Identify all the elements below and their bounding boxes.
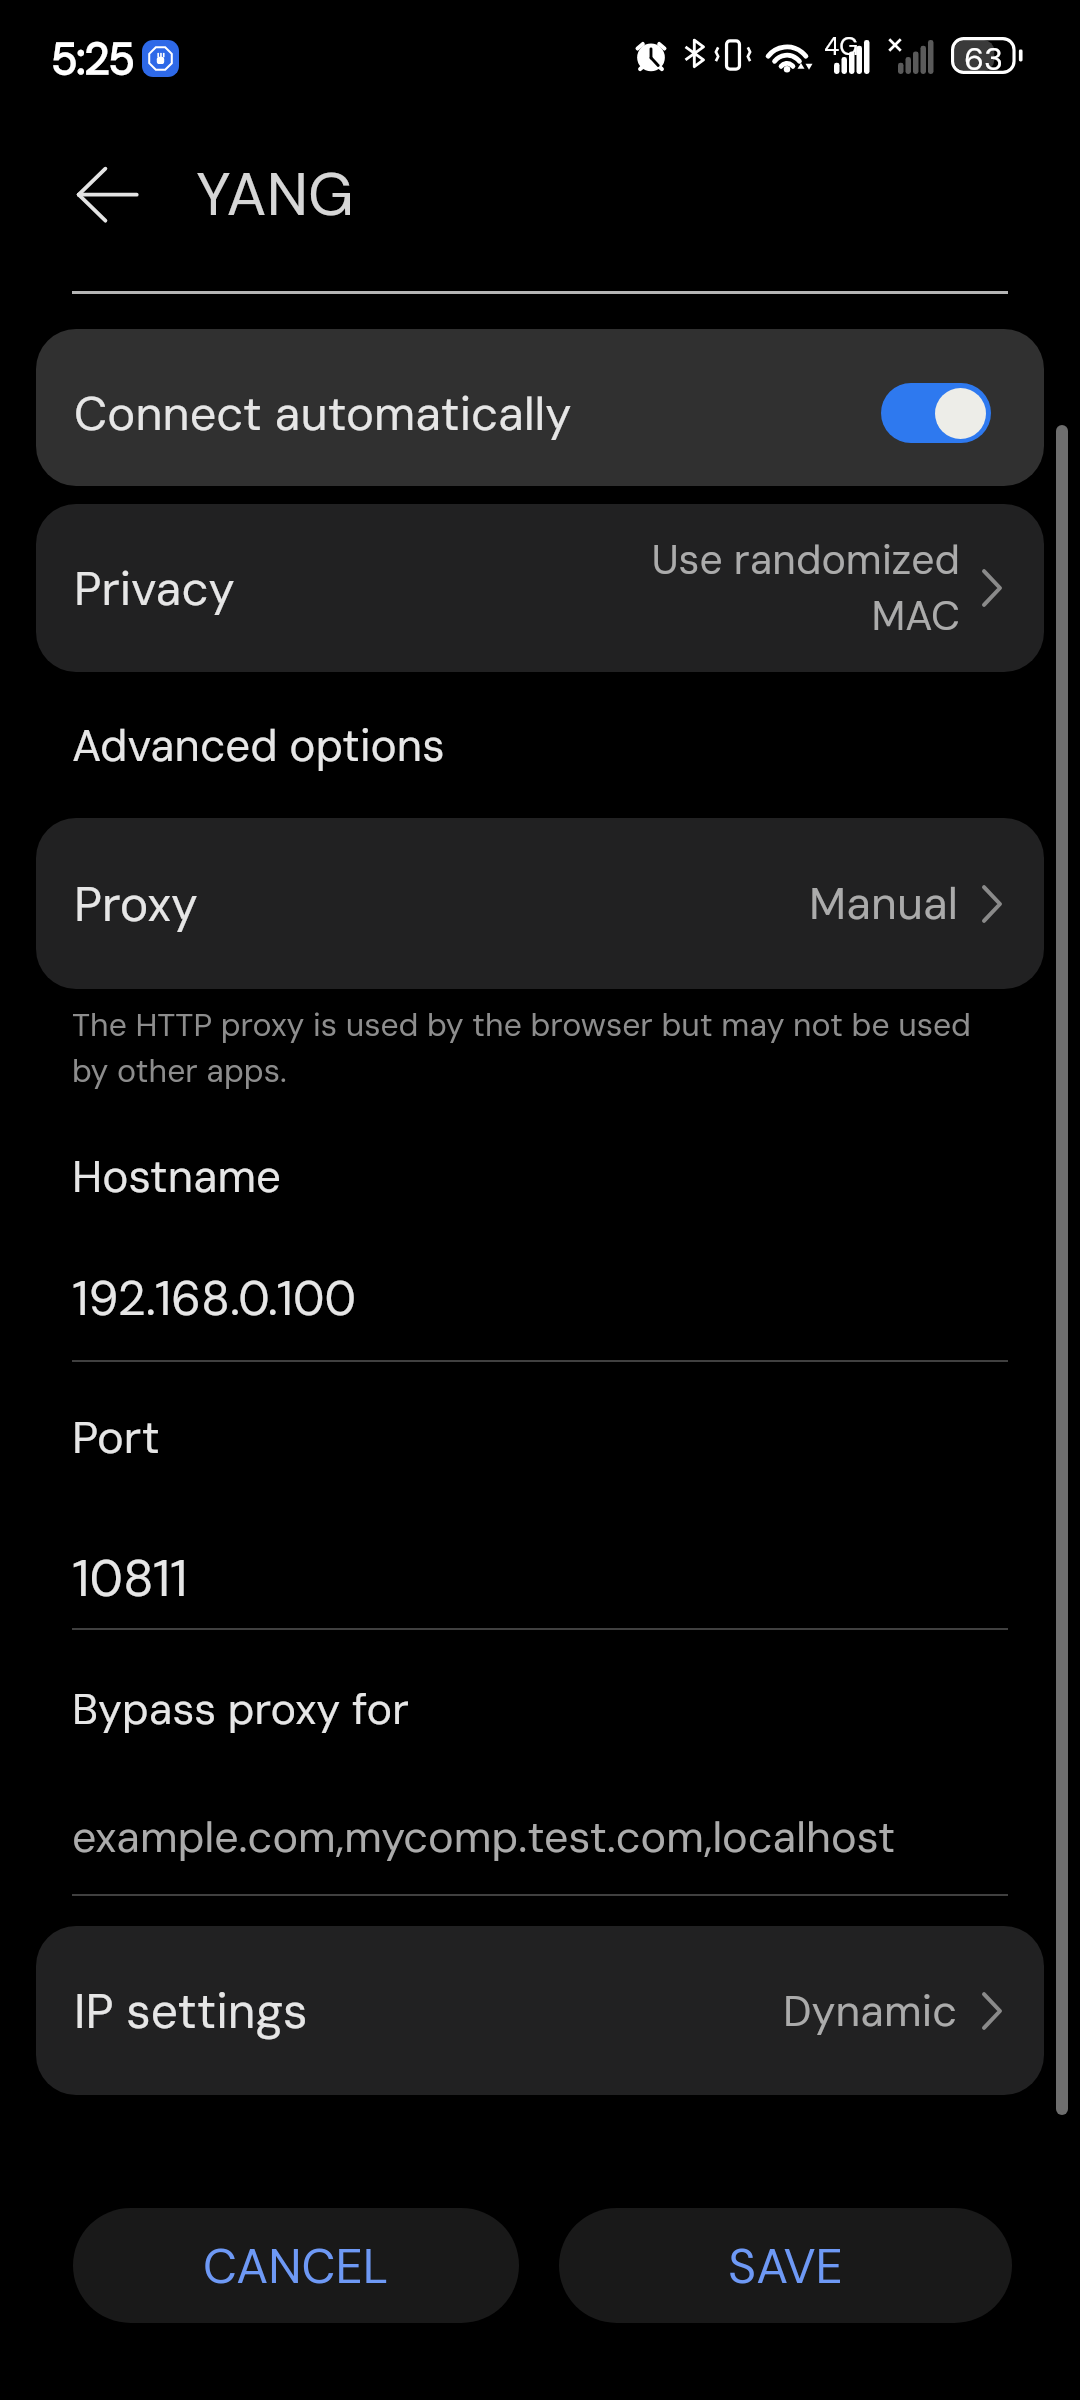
staticText: SAVE: [728, 2235, 843, 2297]
staticText: Dynamic: [783, 1983, 958, 2039]
staticText: Connect automatically: [74, 383, 881, 444]
staticText: Privacy: [74, 558, 235, 619]
staticText: Advanced options: [72, 717, 445, 774]
button[interactable]: Connect automatically: [881, 383, 991, 443]
staticText: example.com,mycomp.test.com,localhost: [72, 1809, 896, 1865]
staticText: 5:25: [51, 30, 134, 87]
staticText: Port: [72, 1408, 160, 1467]
staticText: 10811: [72, 1545, 188, 1611]
staticText: 63: [964, 38, 1004, 80]
button[interactable]: SAVE: [559, 2208, 1012, 2323]
staticText: 4G: [824, 30, 859, 63]
button[interactable]: Connect automatically: [36, 329, 1044, 486]
staticText: Manual: [809, 874, 958, 933]
staticText: Hostname: [72, 1148, 281, 1205]
button[interactable]: IP settings: [36, 1926, 1044, 2095]
button[interactable]: CANCEL: [73, 2208, 519, 2323]
staticText: The HTTP proxy is used by the browser bu…: [72, 1004, 992, 1092]
staticText: Bypass proxy for: [72, 1681, 409, 1737]
staticText: Use randomized MAC: [651, 533, 960, 643]
staticText: CANCEL: [203, 2235, 389, 2297]
staticText: Proxy: [74, 873, 198, 935]
button[interactable]: Proxy: [36, 818, 1044, 989]
staticText: 192.168.0.100: [72, 1267, 356, 1329]
staticText: IP settings: [74, 1980, 308, 2042]
button[interactable]: Privacy: [36, 504, 1044, 672]
button[interactable]: Back: [62, 150, 154, 240]
staticText: YANG: [196, 155, 354, 233]
